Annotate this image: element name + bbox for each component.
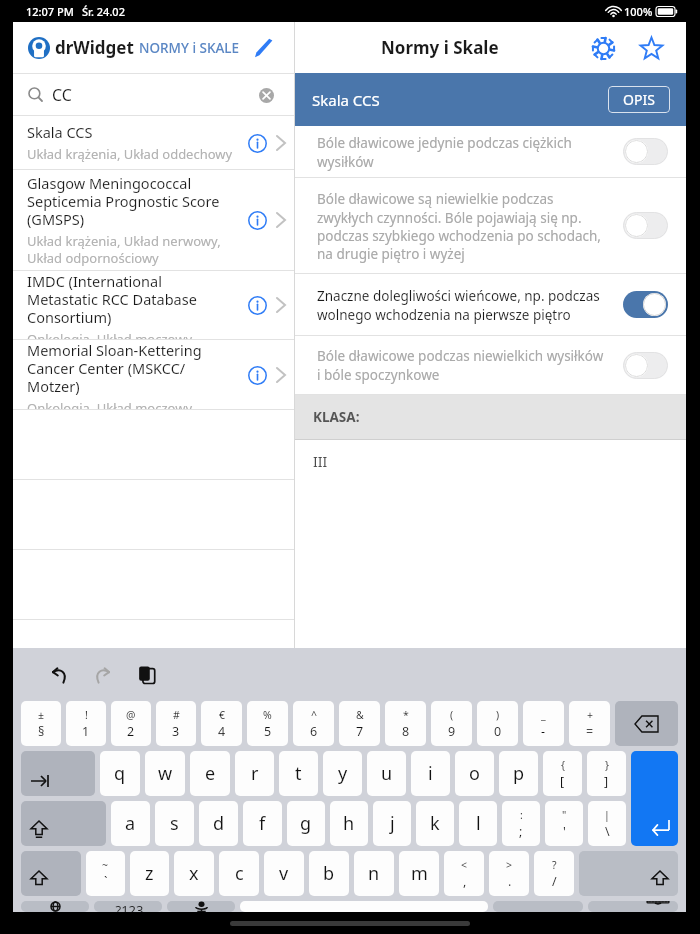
staticText: Śr. 24.02 xyxy=(82,4,125,19)
button[interactable]: c xyxy=(219,851,259,896)
staticText: k xyxy=(430,811,440,836)
button[interactable]: Toggle xyxy=(623,352,668,379)
button[interactable]: + xyxy=(569,701,610,746)
button[interactable]: " xyxy=(545,801,583,846)
button[interactable]: | xyxy=(588,801,626,846)
button[interactable]: o xyxy=(455,751,494,796)
button[interactable]: Paste xyxy=(129,657,165,693)
button[interactable]: < xyxy=(444,851,484,896)
button[interactable]: x xyxy=(174,851,214,896)
button[interactable]: } xyxy=(587,751,626,796)
button[interactable]: * xyxy=(385,701,426,746)
button[interactable]: t xyxy=(279,751,318,796)
button[interactable]: & xyxy=(339,701,380,746)
button[interactable]: % xyxy=(247,701,288,746)
button[interactable]: Clear search xyxy=(253,82,279,108)
button[interactable]: l xyxy=(459,801,497,846)
button[interactable]: ^ xyxy=(293,701,334,746)
button[interactable]: OPIS xyxy=(608,86,670,113)
button[interactable]: Favorites xyxy=(634,31,668,65)
button[interactable]: j xyxy=(373,801,411,846)
button[interactable]: y xyxy=(323,751,362,796)
button[interactable]: s xyxy=(155,801,194,846)
button[interactable]: Settings xyxy=(586,31,620,65)
button[interactable]: _ xyxy=(523,701,564,746)
button[interactable]: Undo xyxy=(41,657,77,693)
button[interactable]: g xyxy=(287,801,325,846)
button[interactable]: Toggle xyxy=(623,212,668,239)
button[interactable]: Language xyxy=(21,901,89,912)
staticText: [ xyxy=(560,773,565,790)
button[interactable]: a xyxy=(111,801,150,846)
staticText: = xyxy=(586,723,594,740)
button[interactable]: Skala CCS xyxy=(13,116,294,169)
button[interactable]: z xyxy=(130,851,169,896)
button[interactable]: Memorial Sloan-Kettering Cancer Center (… xyxy=(13,340,294,409)
button[interactable]: Info xyxy=(242,290,272,320)
button[interactable]: Bóle dławicowe są niewielkie podczas zwy… xyxy=(295,178,686,273)
staticText: & xyxy=(356,708,364,722)
button[interactable]: Backspace xyxy=(615,701,678,746)
button[interactable]: ) xyxy=(477,701,518,746)
button[interactable]: ( xyxy=(431,701,472,746)
button[interactable]: IMDC (International Metastatic RCC Datab… xyxy=(13,271,294,339)
staticText: o xyxy=(469,761,480,786)
button[interactable]: Shift xyxy=(21,801,106,846)
button[interactable]: q xyxy=(100,751,140,796)
button[interactable]: p xyxy=(499,751,538,796)
button[interactable]: Info xyxy=(242,128,272,158)
staticText: Onkologia, Układ moczowy xyxy=(27,399,193,409)
button[interactable]: w xyxy=(145,751,185,796)
button[interactable]: Shift xyxy=(579,851,678,896)
button[interactable]: Hide keyboard xyxy=(588,901,678,912)
button[interactable]: h xyxy=(330,801,368,846)
button[interactable]: Redo xyxy=(85,657,121,693)
button[interactable]: CC xyxy=(28,74,279,115)
button[interactable]: Info xyxy=(242,360,272,390)
staticText: n xyxy=(368,861,380,886)
button[interactable]: b xyxy=(309,851,349,896)
staticText: g xyxy=(300,811,312,836)
staticText: ] xyxy=(604,773,609,790)
button[interactable]: i xyxy=(411,751,450,796)
button[interactable]: Edit xyxy=(249,33,279,63)
button[interactable]: ± xyxy=(21,701,61,746)
button[interactable]: k xyxy=(416,801,454,846)
button[interactable]: # xyxy=(156,701,196,746)
button[interactable]: Bóle dławicowe podczas niewielkich wysił… xyxy=(295,336,686,394)
button[interactable]: @ xyxy=(111,701,151,746)
button[interactable]: Znaczne dolegliwości wieńcowe, np. podcz… xyxy=(295,274,686,335)
staticText: . xyxy=(508,873,512,890)
staticText: 2 xyxy=(127,723,135,740)
staticText: NORMY i SKALE xyxy=(139,39,240,57)
button[interactable]: Toggle xyxy=(623,138,668,165)
button[interactable]: ! xyxy=(66,701,106,746)
button[interactable]: n xyxy=(354,851,394,896)
button[interactable]: ? xyxy=(534,851,574,896)
button[interactable]: Glasgow Meningococcal Septicemia Prognos… xyxy=(13,170,294,270)
button[interactable]: m xyxy=(399,851,439,896)
button[interactable]: Shift xyxy=(21,851,81,896)
button[interactable]: Info xyxy=(242,205,272,235)
button[interactable]: Return xyxy=(631,751,678,846)
button[interactable]: Bóle dławicowe jedynie podczas ciężkich … xyxy=(295,126,686,177)
button[interactable]: € xyxy=(201,701,242,746)
button[interactable]: Space xyxy=(240,901,488,912)
button[interactable]: > xyxy=(489,851,529,896)
button[interactable]: Dictation xyxy=(167,901,235,912)
button[interactable]: v xyxy=(264,851,304,896)
staticText: } xyxy=(605,758,609,772)
button[interactable]: r xyxy=(235,751,274,796)
button[interactable]: { xyxy=(543,751,582,796)
button[interactable]: Tab xyxy=(21,751,95,796)
button[interactable]: Numbers xyxy=(493,901,583,912)
button[interactable]: Numbers xyxy=(94,901,162,912)
button[interactable]: ~ xyxy=(86,851,125,896)
staticText: h xyxy=(343,811,355,836)
button[interactable]: : xyxy=(502,801,540,846)
button[interactable]: f xyxy=(243,801,282,846)
button[interactable]: Toggle xyxy=(623,291,668,318)
button[interactable]: d xyxy=(199,801,238,846)
button[interactable]: u xyxy=(367,751,406,796)
button[interactable]: e xyxy=(190,751,230,796)
